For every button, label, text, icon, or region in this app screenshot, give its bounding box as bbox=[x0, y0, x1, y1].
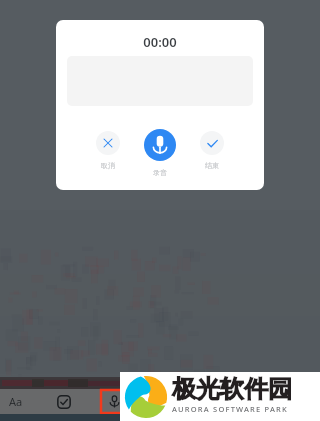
button[interactable]: Voice input bbox=[95, 389, 133, 414]
button[interactable]: 录音 bbox=[140, 129, 180, 177]
staticText: 极光软件园 bbox=[172, 374, 292, 404]
staticText: 00:00 bbox=[143, 33, 177, 51]
button[interactable]: 结束 bbox=[192, 131, 232, 170]
staticText: 取消 bbox=[101, 161, 115, 170]
staticText: 结束 bbox=[205, 161, 219, 170]
button[interactable]: 取消 bbox=[88, 131, 128, 170]
button[interactable]: Tasks bbox=[32, 389, 95, 414]
staticText: 录音 bbox=[153, 168, 167, 177]
staticText: Aa bbox=[9, 394, 23, 409]
staticText: AURORA SOFTWARE PARK bbox=[172, 404, 288, 414]
button[interactable]: Aa bbox=[0, 389, 32, 414]
